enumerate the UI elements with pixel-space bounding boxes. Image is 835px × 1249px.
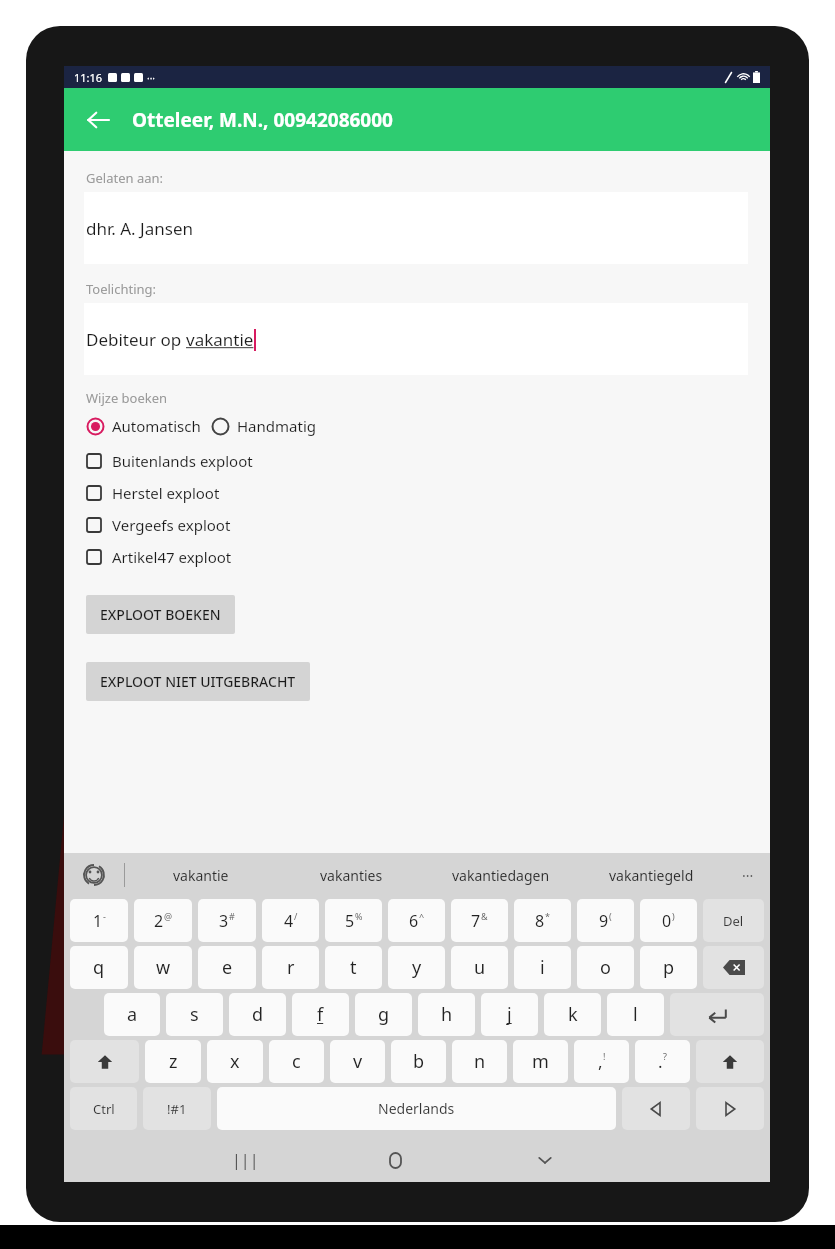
button[interactable]: Recents [170,1138,320,1182]
button[interactable]: 7 [451,899,508,942]
button[interactable]: EXPLOOT NIET UITGEBRACHT [86,662,310,701]
staticText: !#1 [167,1100,187,1118]
button[interactable]: a [104,993,160,1036]
button[interactable]: s [166,993,223,1036]
button[interactable]: d [229,993,286,1036]
staticText: n [474,1049,486,1074]
staticText: 8 [535,910,545,932]
staticText: u [474,955,486,980]
button[interactable]: Shift [696,1040,764,1083]
button[interactable]: j [481,993,538,1036]
staticText: 1 [93,910,103,932]
button[interactable]: EXPLOOT BOEKEN [86,595,235,634]
staticText: s [190,1002,199,1027]
staticText: # [229,910,235,922]
button[interactable]: More suggestions [726,853,770,897]
button[interactable]: k [544,993,601,1036]
staticText: f [317,1002,324,1027]
staticText: 11:16 [74,70,103,85]
staticText: j [507,1002,512,1027]
button[interactable]: r [262,946,319,989]
button[interactable]: y [388,946,445,989]
button[interactable]: 1 [70,899,128,942]
button[interactable]: Enter [670,993,764,1036]
staticText: vakanties [320,866,383,885]
button[interactable]: Artikel47 exploot [64,541,770,573]
staticText: Handmatig [237,416,316,436]
button[interactable]: Emoji [64,853,124,897]
button[interactable]: dhr. A. Jansen [84,192,748,264]
staticText: ··· [742,866,754,885]
button[interactable]: Herstel exploot [64,477,770,509]
button[interactable]: Home [320,1138,470,1182]
button[interactable]: h [418,993,475,1036]
staticText: 9 [599,910,609,932]
button[interactable]: x [207,1040,263,1083]
staticText: vakantie [173,866,229,885]
button[interactable]: 0 [640,899,697,942]
staticText: Artikel47 exploot [112,547,232,567]
button[interactable]: 6 [388,899,445,942]
button[interactable]: Cursor right [696,1087,764,1130]
button[interactable]: 3 [198,899,256,942]
staticText: Del [723,912,744,930]
button[interactable]: v [330,1040,385,1083]
button[interactable]: o [577,946,634,989]
button[interactable]: 2 [134,899,192,942]
staticText: Nederlands [378,1099,455,1118]
staticText: Herstel exploot [112,483,220,503]
button[interactable]: 4 [262,899,319,942]
staticText: c [292,1049,301,1074]
button[interactable]: Shift [70,1040,139,1083]
button[interactable]: u [451,946,508,989]
button[interactable]: q [70,946,128,989]
staticText: EXPLOOT NIET UITGEBRACHT [100,672,296,691]
button[interactable]: m [513,1040,568,1083]
button[interactable]: Backspace [703,946,764,989]
button[interactable]: vakantie [125,853,276,897]
button[interactable]: vakantiedagen [426,853,576,897]
staticText: 5 [345,910,355,932]
staticText: Buitenlands exploot [112,451,253,471]
staticText: p [663,955,675,980]
button[interactable]: vakantiegeld [576,853,726,897]
button[interactable]: Handmatig [211,413,316,439]
button[interactable]: w [134,946,192,989]
button[interactable]: f [292,993,349,1036]
button[interactable]: vakanties [276,853,426,897]
staticText: l [633,1002,638,1027]
staticText: , [598,1050,603,1073]
button[interactable]: 9 [577,899,634,942]
button[interactable]: c [269,1040,324,1083]
button[interactable]: Back [76,98,120,142]
staticText: Gelaten aan: [86,169,163,187]
staticText: ||| [232,1149,259,1171]
button[interactable]: 8 [514,899,571,942]
button[interactable]: Ctrl [70,1087,137,1130]
button[interactable]: Vergeefs exploot [64,509,770,541]
button[interactable]: !#1 [143,1087,211,1130]
button[interactable]: n [452,1040,507,1083]
button[interactable]: , [574,1040,629,1083]
staticText: Wijze boeken [86,389,168,407]
button[interactable]: t [325,946,382,989]
staticText: ! [603,1050,606,1062]
button[interactable]: l [607,993,664,1036]
button[interactable]: 5 [325,899,382,942]
button[interactable]: Buitenlands exploot [64,445,770,477]
button[interactable]: Nederlands [217,1087,616,1130]
button[interactable]: i [514,946,571,989]
button[interactable]: Cursor left [622,1087,690,1130]
button[interactable]: . [635,1040,690,1083]
button[interactable]: b [391,1040,446,1083]
button[interactable]: z [145,1040,201,1083]
button[interactable]: p [640,946,697,989]
button[interactable]: Hide keyboard [470,1138,620,1182]
staticText: t [350,955,357,980]
button[interactable]: Automatisch [86,413,201,439]
button[interactable]: Del [703,899,764,942]
button[interactable]: g [355,993,412,1036]
button[interactable]: e [198,946,256,989]
staticText: q [93,955,105,980]
button[interactable]: Debiteur op [84,303,748,375]
